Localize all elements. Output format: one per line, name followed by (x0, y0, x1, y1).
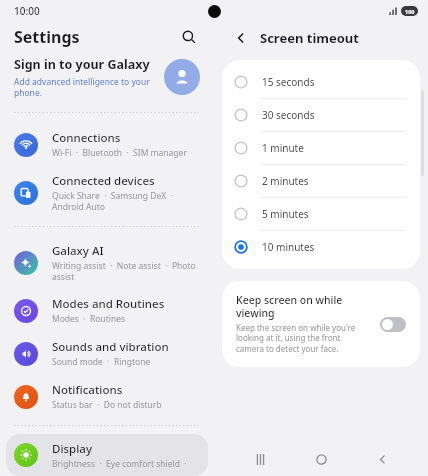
button[interactable]: 1 minute (222, 132, 420, 165)
button[interactable]: Recents (245, 444, 275, 474)
button[interactable]: 2 minutes (222, 165, 420, 198)
button[interactable]: Back (230, 27, 252, 49)
staticText: Settings (14, 26, 80, 48)
button[interactable]: Back (367, 444, 397, 474)
staticText: Sound mode · Ringtone (52, 356, 151, 368)
staticText: Modes and Routines (52, 296, 165, 312)
staticText: Connected devices (52, 173, 155, 189)
button[interactable]: Connected devices (6, 166, 208, 219)
staticText: Keep the screen on while you're looking … (236, 322, 370, 355)
staticText: 1 minute (262, 141, 304, 155)
staticText: Modes · Routines (52, 313, 126, 325)
staticText: Add advanced intelligence to your phone. (14, 76, 164, 98)
staticText: Display (52, 441, 92, 457)
staticText: Connections (52, 130, 121, 146)
button[interactable]: 5 minutes (222, 198, 420, 231)
button[interactable]: Home (306, 444, 336, 474)
staticText: Wi-Fi · Bluetooth · SIM manager (52, 147, 187, 159)
button[interactable]: Sign in to your Galaxy (0, 52, 214, 104)
button[interactable]: Keep screen on while viewing (222, 281, 420, 367)
staticText: 30 seconds (262, 108, 315, 122)
staticText: Brightness · Eye comfort shield · Naviga… (52, 458, 200, 469)
button[interactable]: 15 seconds (222, 66, 420, 99)
staticText: 5 minutes (262, 207, 309, 221)
button[interactable]: 30 seconds (222, 99, 420, 132)
staticText: Sounds and vibration (52, 339, 169, 355)
staticText: Notifications (52, 382, 123, 398)
staticText: 100 (405, 8, 415, 15)
staticText: Writing assist · Note assist · Photo ass… (52, 260, 200, 282)
button[interactable]: 10 minutes (222, 231, 420, 263)
staticText: Sign in to your Galaxy (14, 56, 150, 73)
button[interactable]: Modes and Routines (6, 289, 208, 332)
staticText: 10:00 (14, 4, 40, 18)
button[interactable]: Notifications (6, 375, 208, 418)
button[interactable]: Search (176, 24, 202, 50)
staticText: Galaxy AI (52, 243, 104, 259)
staticText: 2 minutes (262, 174, 309, 188)
staticText: 15 seconds (262, 75, 315, 89)
button[interactable]: Display (6, 434, 208, 476)
button[interactable]: Connections (6, 123, 208, 166)
button[interactable]: Sounds and vibration (6, 332, 208, 375)
staticText: 10 minutes (262, 240, 315, 254)
button[interactable]: Galaxy AI (6, 236, 208, 289)
button[interactable]: Keep screen on while viewing toggle (380, 317, 406, 332)
staticText: Keep screen on while viewing (236, 293, 370, 320)
staticText: Status bar · Do not disturb (52, 399, 162, 411)
staticText: Quick Share · Samsung DeX · Android Auto (52, 190, 200, 212)
staticText: Screen timeout (260, 29, 359, 47)
